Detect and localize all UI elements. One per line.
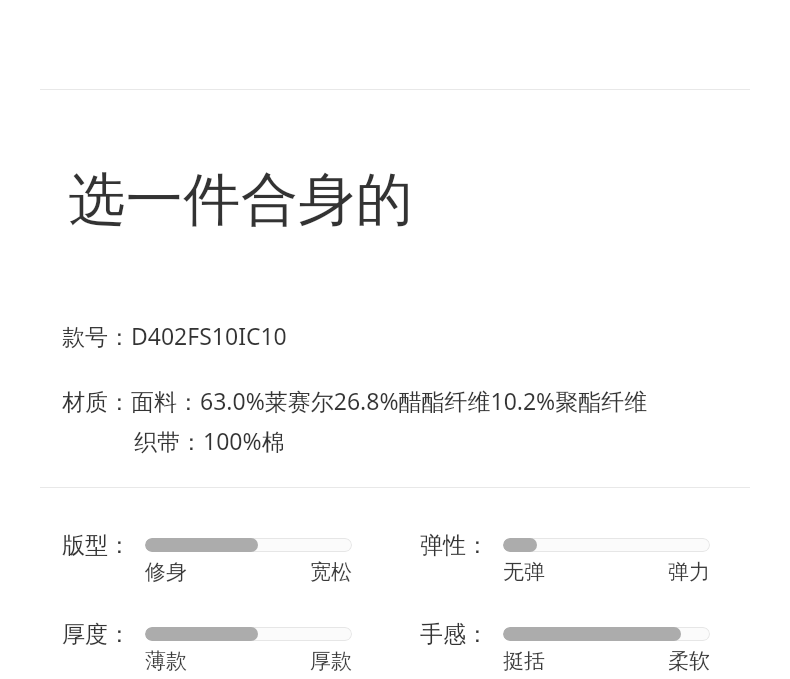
staticText: 材质：面料：63.0%莱赛尔26.8%醋酯纤维10.2%聚酯纤维: [62, 385, 648, 416]
staticText: 宽松: [310, 559, 352, 585]
staticText: 无弹: [503, 559, 545, 585]
button[interactable]: 选一件合身的: [68, 164, 413, 236]
staticText: 薄款: [145, 648, 187, 674]
staticText: 弹力: [668, 559, 710, 585]
staticText: 款号：D402FS10IC10: [62, 320, 287, 351]
staticText: 修身: [145, 559, 187, 585]
staticText: 厚度：: [62, 620, 131, 648]
staticText: 柔软: [668, 648, 710, 674]
staticText: 弹性：: [420, 531, 489, 559]
staticText: 织带：100%棉: [134, 425, 285, 456]
staticText: 手感：: [420, 620, 489, 648]
staticText: 挺括: [503, 648, 545, 674]
button[interactable]: 手感：挺括-柔软: [420, 620, 710, 674]
staticText: 选一件合身的: [68, 164, 413, 236]
button[interactable]: 版型：修身-宽松: [62, 531, 352, 585]
staticText: 版型：: [62, 531, 131, 559]
staticText: 厚款: [310, 648, 352, 674]
button[interactable]: 弹性：无弹-弹力: [420, 531, 710, 585]
button[interactable]: 厚度：薄款-厚款: [62, 620, 352, 674]
